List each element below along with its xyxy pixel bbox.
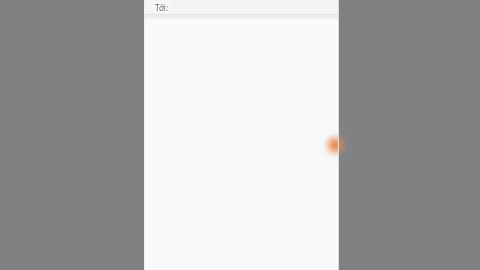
staticText: Tới:	[155, 2, 169, 13]
button[interactable]: Attachment	[324, 130, 354, 160]
button[interactable]: Tới:	[153, 2, 171, 13]
